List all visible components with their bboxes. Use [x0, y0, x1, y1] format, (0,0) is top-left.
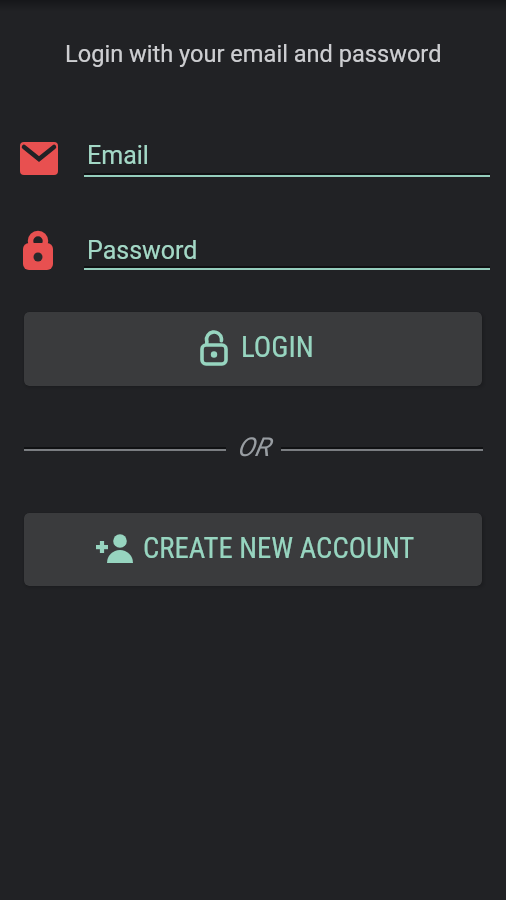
staticText: Password [87, 236, 198, 265]
button[interactable]: Email [10, 132, 496, 184]
staticText: Email [87, 141, 149, 170]
button[interactable]: Password [10, 225, 496, 277]
staticText: OR [237, 432, 270, 462]
staticText: Login with your email and password [65, 40, 442, 68]
staticText: LOGIN [241, 330, 314, 364]
button[interactable]: LOGIN [24, 312, 482, 386]
button[interactable]: CREATE NEW ACCOUNT [24, 513, 482, 586]
staticText: CREATE NEW ACCOUNT [143, 531, 415, 565]
